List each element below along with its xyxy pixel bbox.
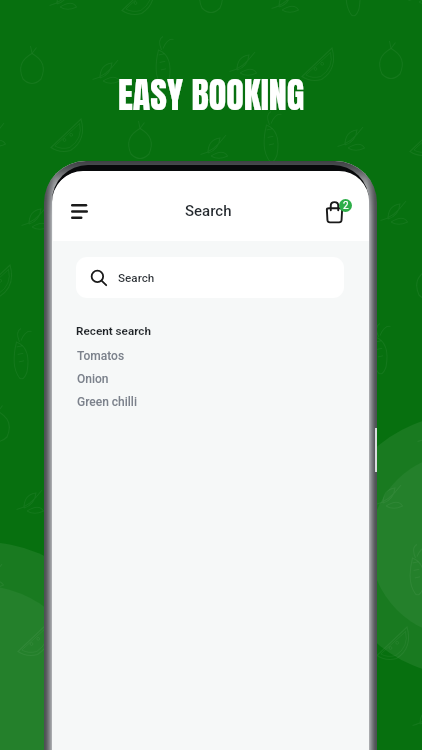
staticText: Green chilli — [77, 395, 137, 409]
staticText: Onion — [77, 372, 109, 386]
button[interactable]: Green chilli — [53, 390, 369, 413]
staticText: 2 — [343, 200, 349, 212]
button[interactable]: Onion — [53, 367, 369, 390]
staticText: Search — [118, 271, 155, 285]
staticText: Search — [185, 202, 232, 220]
staticText: Recent search — [76, 324, 151, 338]
staticText: EASY BOOKING — [118, 68, 305, 122]
staticText: Tomatos — [77, 349, 125, 363]
button[interactable]: Cart — [320, 192, 354, 226]
button[interactable]: Tomatos — [53, 344, 369, 367]
button[interactable]: Search — [76, 257, 344, 298]
button[interactable]: Menu — [58, 192, 100, 230]
